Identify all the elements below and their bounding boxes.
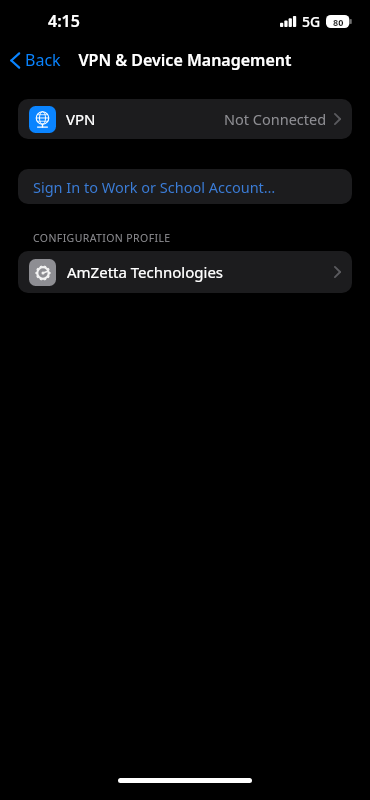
staticText: 4:15 — [48, 10, 80, 32]
staticText: CONFIGURATION PROFILE — [33, 231, 171, 245]
staticText: Sign In to Work or School Account… — [33, 177, 276, 197]
staticText: VPN — [66, 109, 96, 129]
staticText: VPN & Device Management — [78, 49, 292, 71]
staticText: Not Connected — [224, 109, 327, 129]
button[interactable]: AmZetta Technologies — [18, 251, 352, 293]
button[interactable]: Back — [0, 45, 69, 75]
button[interactable]: Sign In to Work or School Account… — [18, 169, 352, 204]
button[interactable]: VPN — [18, 99, 352, 139]
staticText: Back — [25, 49, 61, 71]
staticText: AmZetta Technologies — [67, 262, 224, 282]
staticText: 80 — [333, 16, 344, 28]
staticText: 5G — [302, 12, 321, 31]
